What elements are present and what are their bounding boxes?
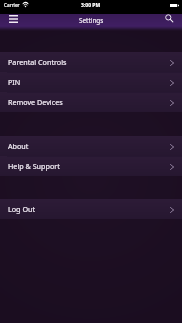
- staticText: Parental Controls: [8, 57, 67, 67]
- button[interactable]: Remove Devices: [0, 92, 182, 112]
- button[interactable]: About: [0, 136, 182, 156]
- button[interactable]: Menu: [3, 11, 23, 26]
- button[interactable]: PIN: [0, 72, 182, 92]
- staticText: Help & Support: [8, 161, 60, 171]
- button[interactable]: Search: [161, 11, 178, 26]
- button[interactable]: Log Out: [0, 199, 182, 219]
- button[interactable]: Parental Controls: [0, 52, 182, 72]
- staticText: Remove Devices: [8, 97, 63, 107]
- button[interactable]: Help & Support: [0, 156, 182, 176]
- staticText: PIN: [8, 77, 21, 87]
- staticText: Carrier: [4, 2, 20, 8]
- staticText: 3:00 PM: [81, 2, 101, 9]
- staticText: About: [8, 141, 29, 151]
- staticText: Settings: [79, 16, 104, 25]
- staticText: Log Out: [8, 204, 36, 214]
